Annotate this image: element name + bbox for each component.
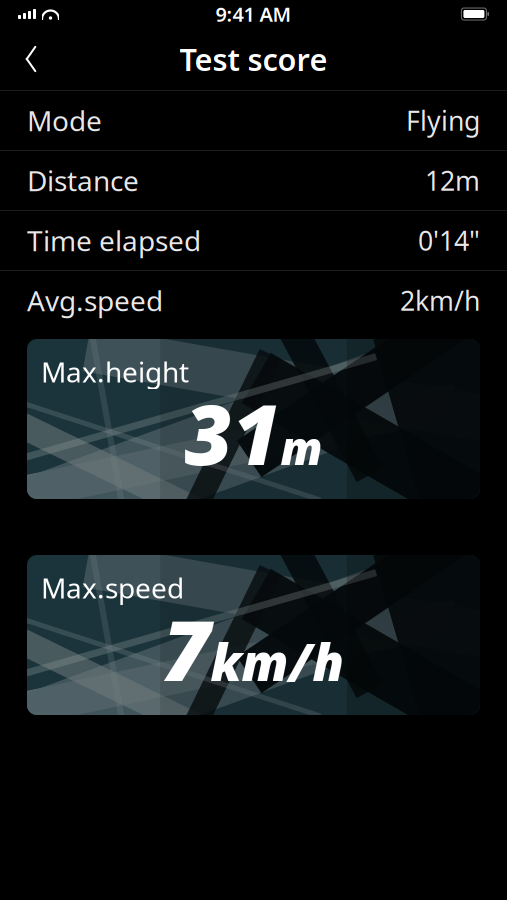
staticText: Avg.speed — [27, 282, 163, 319]
staticText: Mode — [27, 102, 102, 139]
staticText: Flying — [406, 103, 480, 138]
staticText: 7 — [162, 594, 210, 704]
button[interactable]: 7 — [27, 555, 480, 715]
staticText: Max.height — [41, 353, 189, 390]
staticText: 0'14" — [418, 223, 480, 258]
staticText: 31 — [184, 378, 280, 488]
staticText: Max.speed — [41, 569, 184, 606]
staticText: 12m — [425, 163, 480, 198]
staticText: 2km/h — [400, 283, 480, 318]
staticText: km/h — [210, 628, 344, 695]
staticText: Test score — [179, 39, 327, 79]
staticText: m — [280, 417, 322, 478]
button[interactable]: 31 — [27, 339, 480, 499]
staticText: 9:41 AM — [215, 1, 291, 27]
staticText: Time elapsed — [27, 222, 201, 259]
button[interactable]: Back — [6, 36, 56, 82]
staticText: Distance — [27, 162, 139, 199]
